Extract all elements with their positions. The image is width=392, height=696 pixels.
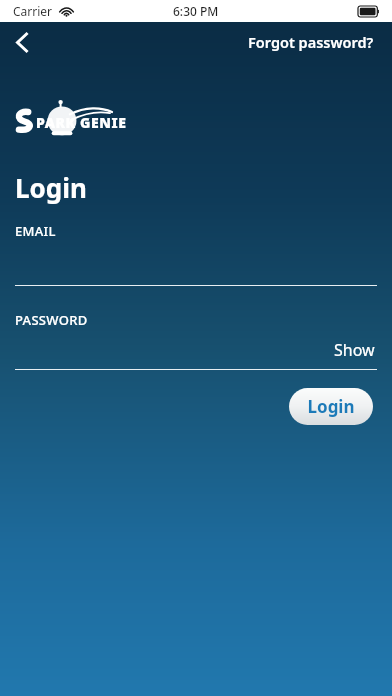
staticText: PASSWORD — [15, 311, 88, 329]
staticText: 6:30 PM — [173, 3, 219, 19]
staticText: Login — [15, 170, 87, 205]
staticText: Carrier — [13, 3, 53, 19]
button[interactable]: Forgot password? — [230, 24, 392, 60]
staticText: Login — [307, 395, 355, 418]
button[interactable]: Login — [289, 388, 373, 425]
button[interactable]: Show — [332, 337, 377, 363]
staticText: PARK GENIE — [36, 113, 127, 132]
staticText: EMAIL — [15, 222, 56, 240]
button[interactable]: Back — [0, 22, 44, 62]
